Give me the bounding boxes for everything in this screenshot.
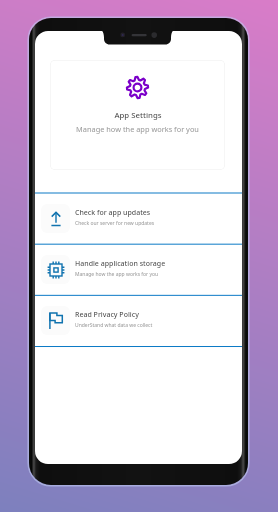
other: Check for app updates xyxy=(47,210,65,228)
staticText: UnderStand what data we collect xyxy=(75,322,153,329)
button[interactable]: Handle application storage xyxy=(35,243,242,294)
staticText: App Settings xyxy=(114,110,162,121)
staticText: Check for app updates xyxy=(75,208,151,218)
button[interactable]: Check for app updates xyxy=(35,192,242,243)
other: Handle application storage xyxy=(47,261,65,279)
other: Read Privacy Policy xyxy=(47,312,65,330)
staticText: Read Privacy Policy xyxy=(75,310,139,320)
button[interactable]: Read Privacy Policy xyxy=(35,294,242,345)
staticText: Handle application storage xyxy=(75,259,166,269)
staticText: Manage how the app works for you xyxy=(75,271,159,278)
staticText: Manage how the app works for you xyxy=(76,124,199,134)
button[interactable]: App Settings xyxy=(50,60,225,170)
staticText: Check our server for new updates xyxy=(75,220,155,227)
